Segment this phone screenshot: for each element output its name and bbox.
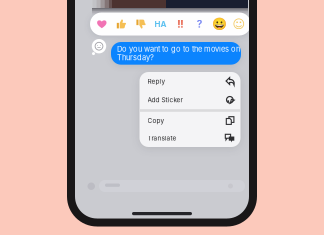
staticText: Add Sticker bbox=[147, 96, 182, 104]
button[interactable]: Translate bbox=[139, 129, 240, 147]
button[interactable]: Copy bbox=[139, 112, 240, 129]
staticText: Translate bbox=[147, 134, 176, 142]
button[interactable]: Add reaction bbox=[91, 39, 107, 56]
button[interactable]: Heart bbox=[92, 12, 112, 35]
staticText: Do you want to go to the movies on Thurs… bbox=[117, 44, 240, 62]
button[interactable]: More emoji bbox=[210, 12, 229, 35]
button[interactable]: Exclamation bbox=[170, 12, 190, 35]
staticText: !! bbox=[177, 18, 183, 30]
button[interactable]: Haha bbox=[151, 12, 170, 35]
button[interactable]: Thumbs down bbox=[131, 12, 151, 35]
button[interactable]: Thumbs up bbox=[112, 12, 131, 35]
staticText: Copy bbox=[147, 117, 164, 124]
button[interactable]: Add Sticker bbox=[139, 91, 240, 109]
button[interactable]: More reactions bbox=[229, 12, 249, 35]
staticText: ☺ bbox=[232, 17, 245, 31]
button[interactable]: Question bbox=[190, 12, 210, 35]
staticText: ? bbox=[197, 18, 203, 30]
staticText: Reply bbox=[147, 77, 165, 85]
staticText: 😀 bbox=[212, 17, 227, 31]
staticText: HA bbox=[155, 19, 167, 29]
button[interactable]: Reply bbox=[139, 72, 240, 91]
